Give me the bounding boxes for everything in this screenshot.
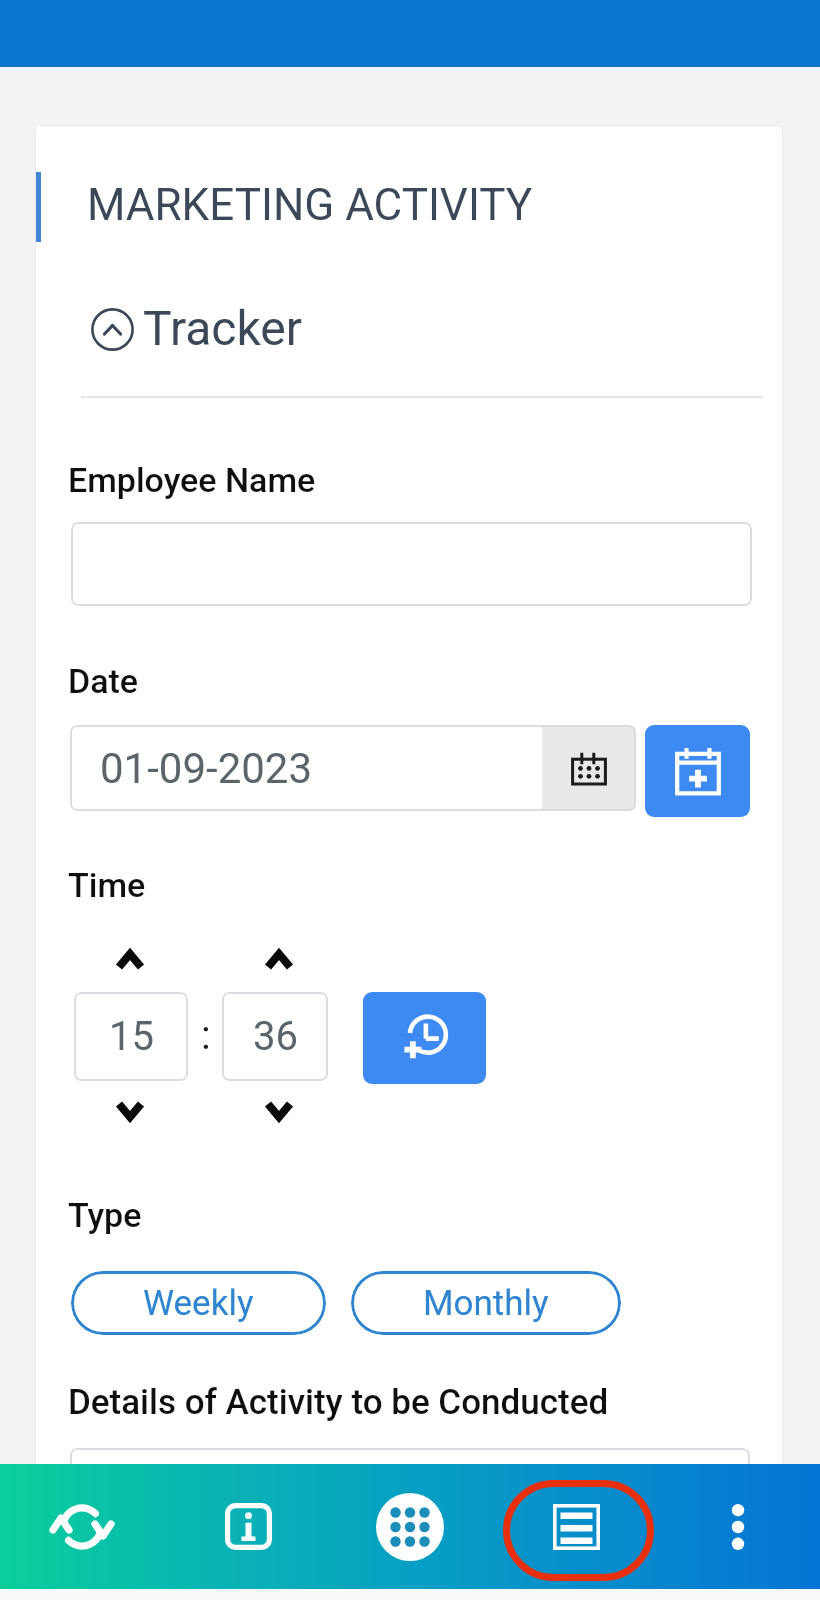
button[interactable]: Increase (85, 931, 175, 989)
button[interactable] (70, 1448, 750, 1525)
button[interactable]: List (508, 1464, 644, 1589)
staticText: : (201, 1012, 211, 1059)
staticText: Date (68, 661, 139, 701)
button[interactable]: Increase (234, 931, 324, 989)
staticText: MARKETING ACTIVITY (87, 179, 533, 231)
button[interactable]: 36 (222, 992, 328, 1081)
button[interactable]: 01-09-2023 (70, 725, 636, 811)
button[interactable] (71, 522, 752, 606)
staticText: 01-09-2023 (100, 744, 313, 793)
button[interactable]: Monthly (351, 1271, 621, 1335)
button[interactable]: Decrease (234, 1081, 324, 1139)
staticText: Type (68, 1195, 142, 1235)
button[interactable]: Apps (342, 1464, 478, 1589)
staticText: 15 (109, 1013, 154, 1060)
button[interactable]: Pick time (363, 992, 486, 1084)
staticText: Weekly (143, 1283, 254, 1324)
button[interactable]: Collapse Tracker (91, 308, 134, 351)
staticText: Time (68, 865, 146, 905)
staticText: Employee Name (68, 460, 316, 500)
button[interactable]: Sync (14, 1464, 150, 1589)
staticText: 36 (253, 1013, 298, 1060)
button[interactable]: Info (180, 1464, 316, 1589)
button[interactable]: More options (670, 1464, 806, 1589)
staticText: Tracker (143, 300, 303, 356)
button[interactable]: Decrease (85, 1081, 175, 1139)
button[interactable]: Pick date (645, 725, 750, 817)
staticText: Monthly (423, 1283, 549, 1324)
button[interactable]: Weekly (71, 1271, 326, 1335)
button[interactable]: 15 (74, 992, 188, 1081)
staticText: Details of Activity to be Conducted (68, 1382, 609, 1423)
